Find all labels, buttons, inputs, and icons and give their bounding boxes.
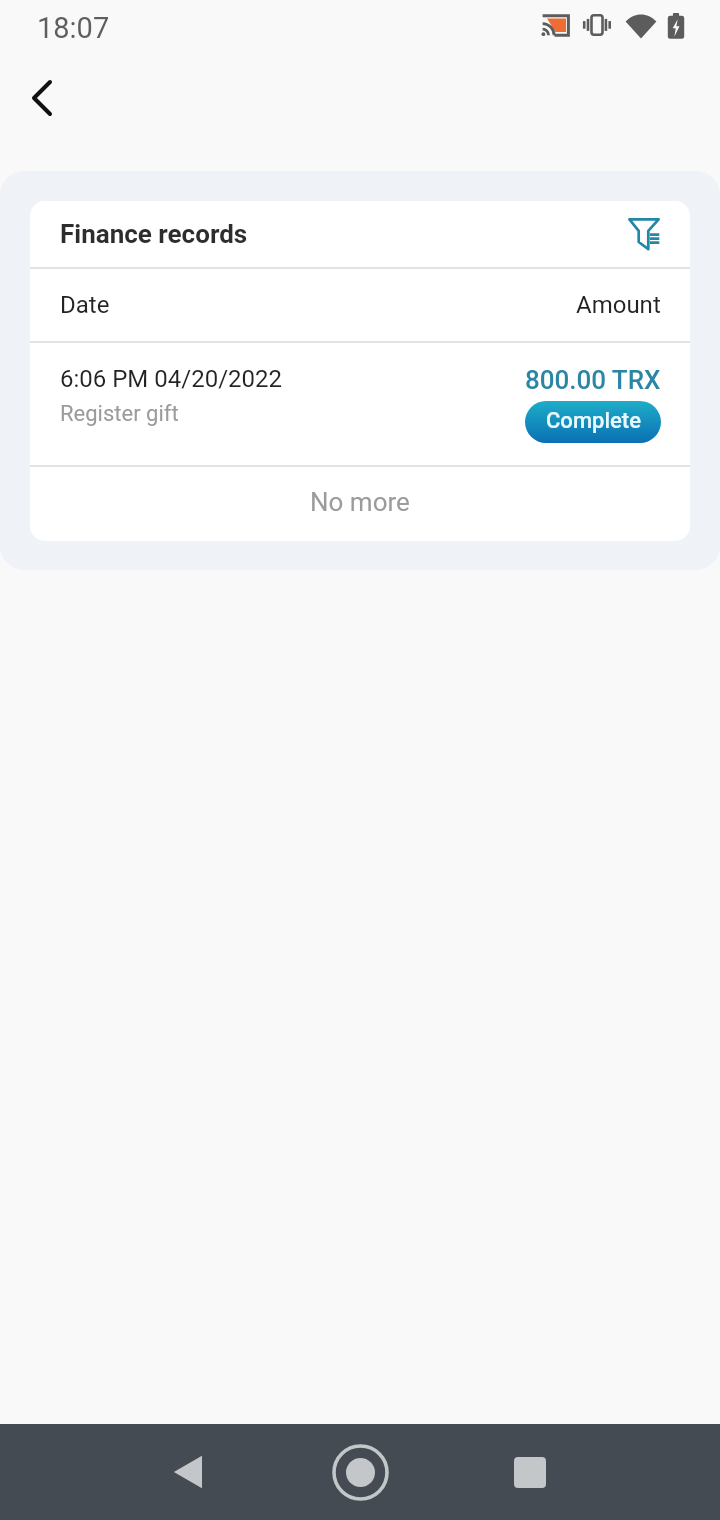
button[interactable]: Filter <box>622 212 666 256</box>
staticText: No more <box>310 487 410 517</box>
staticText: 6:06 PM 04/20/2022 <box>60 365 282 393</box>
button[interactable]: 6:06 PM 04/20/2022 <box>30 343 690 465</box>
button[interactable]: Home <box>312 1424 408 1520</box>
staticText: Complete <box>546 408 641 434</box>
button[interactable]: Back <box>140 1424 236 1520</box>
staticText: Finance records <box>60 219 248 249</box>
staticText: Register gift <box>60 401 179 427</box>
staticText: Amount <box>576 291 661 319</box>
button[interactable]: Complete <box>525 401 661 443</box>
button[interactable]: Back <box>10 66 74 130</box>
button[interactable]: Recent apps <box>482 1424 578 1520</box>
staticText: Date <box>60 291 110 319</box>
staticText: 800.00 TRX <box>525 365 661 395</box>
staticText: 18:07 <box>37 11 110 45</box>
